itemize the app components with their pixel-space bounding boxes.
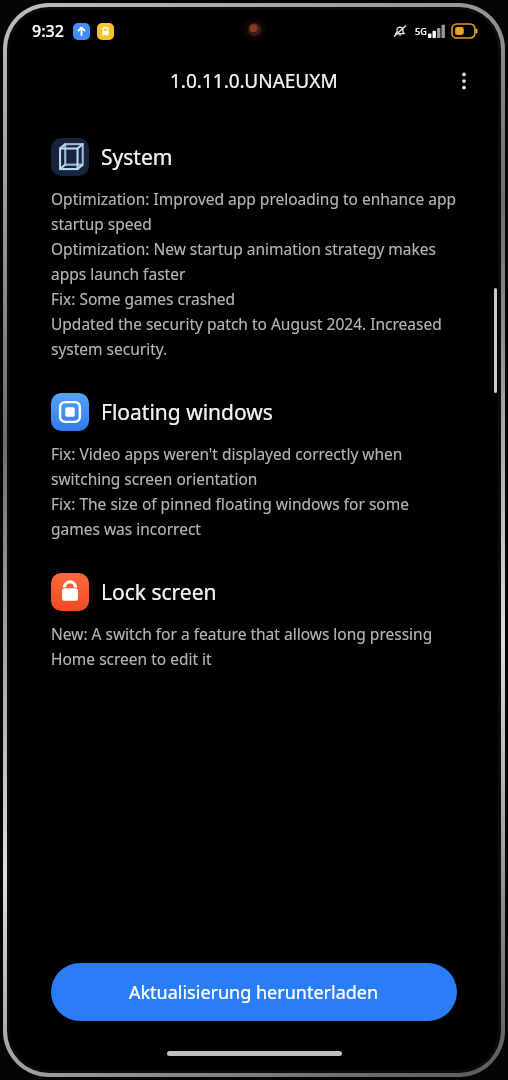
button[interactable]: Aktualisierung herunterladen [51,963,457,1021]
staticText: 9:32 [32,20,64,42]
staticText: System [101,143,173,172]
button[interactable]: Floating windows [51,393,457,431]
button[interactable]: Lock screen [51,573,457,611]
staticText: 5G [415,25,427,37]
staticText: 1.0.11.0.UNAEUXM [170,68,338,94]
button[interactable]: More options [442,59,486,103]
staticText: Floating windows [101,398,273,427]
staticText: Aktualisierung herunterladen [129,980,379,1005]
button[interactable]: System [51,138,457,176]
staticText: Optimization: Improved app preloading to… [51,188,457,359]
staticText: New: A switch for a feature that allows … [51,623,457,669]
staticText: Fix: Video apps weren't displayed correc… [51,443,457,539]
staticText: Lock screen [101,578,217,607]
